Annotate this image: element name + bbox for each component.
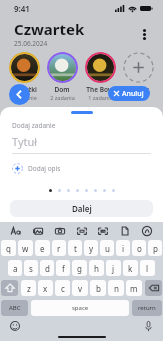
- staticText: a: [13, 263, 18, 274]
- staticText: 9:41: [14, 3, 30, 14]
- button[interactable]: The Boys: [82, 51, 118, 102]
- button[interactable]: Dokument: [118, 224, 132, 238]
- button[interactable]: Skanuj tekst: [96, 224, 110, 238]
- staticText: p: [153, 243, 158, 254]
- button[interactable]: v: [72, 280, 88, 296]
- button[interactable]: Stwórz: [120, 51, 156, 95]
- button[interactable]: q: [1, 240, 16, 256]
- button[interactable]: ABC: [1, 300, 28, 316]
- button[interactable]: b: [90, 280, 106, 296]
- button[interactable]: w: [18, 240, 33, 256]
- staticText: d: [45, 263, 50, 274]
- button[interactable]: a: [8, 260, 22, 276]
- staticText: f: [62, 263, 65, 274]
- button[interactable]: t: [68, 240, 82, 256]
- staticText: 1 zadanie: [88, 94, 113, 101]
- button[interactable]: Wstecz: [9, 84, 30, 105]
- button[interactable]: r: [52, 240, 66, 256]
- button[interactable]: y: [84, 240, 98, 256]
- staticText: Tytuł: [12, 134, 38, 149]
- button[interactable]: Dom: [44, 51, 80, 102]
- staticText: t: [74, 243, 77, 254]
- staticText: Stwórz: [127, 85, 149, 94]
- button[interactable]: n: [108, 280, 124, 296]
- button[interactable]: x: [38, 280, 53, 296]
- staticText: n: [114, 283, 119, 294]
- staticText: i: [122, 243, 125, 254]
- button[interactable]: Dyktowanie: [141, 319, 155, 333]
- staticText: x: [43, 283, 48, 294]
- staticText: Dalej: [72, 203, 92, 214]
- button[interactable]: i: [116, 240, 130, 256]
- staticText: s: [29, 263, 33, 274]
- staticText: h: [94, 263, 99, 274]
- staticText: c: [61, 283, 65, 294]
- button[interactable]: s: [24, 260, 38, 276]
- button[interactable]: Papużki: [7, 51, 42, 102]
- button[interactable]: Rysuj: [140, 224, 154, 238]
- button[interactable]: p: [148, 240, 162, 256]
- button[interactable]: g: [72, 260, 87, 276]
- button[interactable]: m: [126, 280, 142, 296]
- button[interactable]: Backspace: [145, 280, 162, 296]
- staticText: l: [146, 263, 149, 274]
- staticText: j: [112, 263, 115, 274]
- button[interactable]: Shift: [1, 280, 18, 296]
- button[interactable]: Anuluj: [108, 86, 150, 101]
- button[interactable]: c: [55, 280, 70, 296]
- button[interactable]: u: [100, 240, 114, 256]
- staticText: Dodaj zadanie: [12, 121, 56, 130]
- button[interactable]: z: [21, 280, 36, 296]
- button[interactable]: l: [140, 260, 155, 276]
- button[interactable]: k: [123, 260, 138, 276]
- staticText: 2 zadania: [50, 94, 75, 101]
- staticText: w: [22, 243, 29, 254]
- staticText: ABC: [9, 304, 21, 312]
- button[interactable]: Format tekstu: [9, 224, 23, 238]
- staticText: z: [27, 283, 31, 294]
- button[interactable]: e: [35, 240, 50, 256]
- staticText: q: [6, 243, 11, 254]
- staticText: Dodaj opis: [28, 164, 61, 173]
- staticText: Czwartek: [14, 19, 85, 39]
- button[interactable]: d: [40, 260, 54, 276]
- staticText: e: [40, 243, 45, 254]
- staticText: v: [78, 283, 83, 294]
- staticText: The Boys: [86, 85, 115, 94]
- staticText: y: [89, 243, 94, 254]
- staticText: u: [105, 243, 110, 254]
- staticText: r: [57, 243, 61, 254]
- staticText: return: [138, 304, 156, 312]
- button[interactable]: Skanuj: [75, 224, 89, 238]
- button[interactable]: o: [132, 240, 146, 256]
- staticText: Papużki: [12, 85, 37, 94]
- button[interactable]: space: [31, 300, 129, 316]
- staticText: g: [77, 263, 82, 274]
- staticText: space: [72, 304, 89, 312]
- staticText: 3 zadanie: [12, 94, 37, 101]
- staticText: o: [137, 243, 142, 254]
- staticText: 25.06.2024: [14, 39, 48, 48]
- button[interactable]: Galeria: [31, 224, 45, 238]
- staticText: Anuluj: [122, 89, 144, 99]
- staticText: b: [96, 283, 101, 294]
- button[interactable]: Dalej: [10, 200, 153, 217]
- staticText: m: [130, 283, 138, 294]
- button[interactable]: Dodaj opis: [10, 161, 63, 176]
- button[interactable]: return: [132, 300, 162, 316]
- button[interactable]: f: [56, 260, 70, 276]
- button[interactable]: j: [106, 260, 121, 276]
- staticText: k: [128, 263, 133, 274]
- button[interactable]: Więcej opcji: [135, 25, 153, 43]
- button[interactable]: h: [89, 260, 104, 276]
- staticText: Dom: [54, 85, 70, 94]
- button[interactable]: Aparat: [53, 224, 67, 238]
- button[interactable]: Emoji: [8, 319, 22, 333]
